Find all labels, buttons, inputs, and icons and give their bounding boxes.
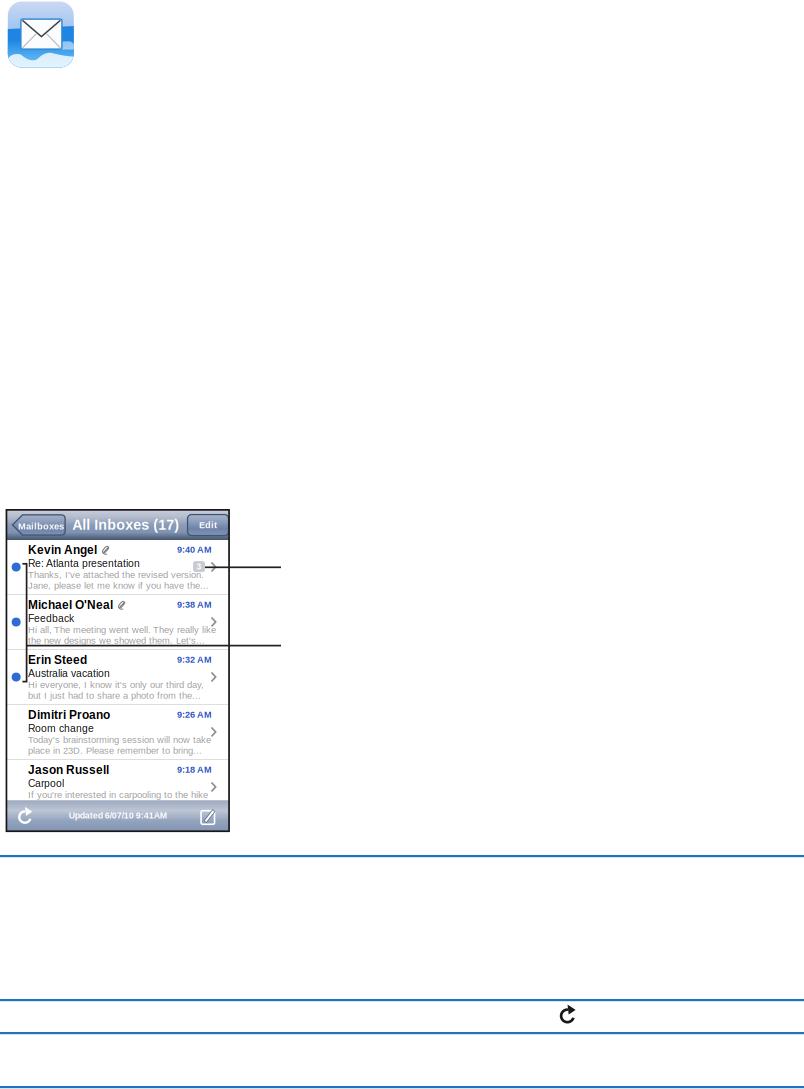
button[interactable]: Erin Steed	[6, 650, 229, 704]
staticText: Carpool	[28, 778, 64, 789]
staticText: Thanks, I've attached the revised versio…	[28, 570, 204, 580]
staticText: Updated 6/07/10 9:41AM	[69, 811, 167, 820]
staticText: 9:32 AM	[177, 655, 212, 665]
button[interactable]: Michael O'Neal	[6, 595, 229, 649]
button[interactable]: Refresh	[11, 802, 39, 830]
staticText: Michael O'Neal	[28, 598, 113, 612]
staticText: 9:18 AM	[177, 765, 212, 775]
staticText: Edit	[199, 520, 217, 530]
staticText: Feedback	[28, 613, 74, 624]
staticText: Jane, please let me know if you have the…	[28, 580, 209, 591]
staticText: Today's brainstorming session will now t…	[28, 735, 211, 745]
button[interactable]: Jason Russell	[6, 760, 229, 814]
staticText: All Inboxes (17)	[72, 517, 179, 533]
staticText: place in 23D. Please remember to bring..…	[28, 745, 202, 756]
button[interactable]: Compose	[195, 802, 223, 830]
staticText: Australia vacation	[28, 668, 110, 679]
button[interactable]: Mailboxes	[11, 514, 66, 536]
staticText: 3	[196, 562, 201, 571]
button[interactable]: Dimitri Proano	[6, 705, 229, 759]
staticText: 9:40 AM	[177, 545, 212, 555]
staticText: Mailboxes	[18, 521, 64, 531]
staticText: Hi everyone, I know it's only our third …	[28, 680, 204, 690]
staticText: 9:38 AM	[177, 600, 212, 610]
staticText: the new designs we showed them. Let's...	[28, 635, 205, 646]
button[interactable]: 3	[6, 540, 229, 594]
staticText: Re: Atlanta presentation	[28, 558, 140, 569]
staticText: Room change	[28, 723, 94, 734]
staticText: If you're interested in carpooling to th…	[28, 790, 208, 800]
staticText: Hi all, The meeting went well. They real…	[28, 625, 216, 635]
staticText: but I just had to share a photo from the…	[28, 690, 201, 701]
staticText: Dimitri Proano	[28, 708, 110, 722]
staticText: Kevin Angel	[28, 543, 97, 557]
staticText: 9:26 AM	[177, 710, 212, 720]
staticText: this weekend, let me know by tomorrow...	[28, 800, 203, 811]
staticText: Jason Russell	[28, 763, 109, 777]
button[interactable]: Edit	[187, 515, 228, 536]
staticText: Erin Steed	[28, 653, 87, 667]
